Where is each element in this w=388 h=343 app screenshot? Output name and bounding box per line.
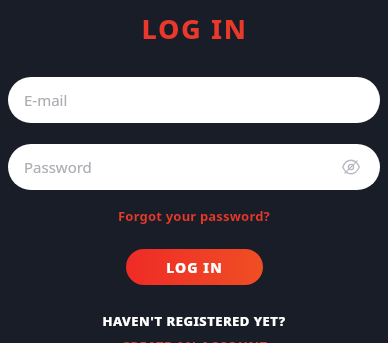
staticText: CREATE AN ACCOUNT [121, 337, 268, 343]
staticText: Forgot your password? [118, 207, 270, 225]
button[interactable]: Password [8, 144, 380, 190]
staticText: E-mail [24, 90, 68, 110]
button[interactable]: LOG IN [126, 249, 263, 285]
button[interactable]: CREATE AN ACCOUNT [121, 337, 268, 343]
button[interactable]: Forgot your password? [118, 207, 270, 225]
staticText: Password [24, 157, 92, 177]
staticText: LOG IN [141, 10, 248, 47]
button[interactable]: E-mail [8, 77, 380, 123]
button[interactable]: Show password [340, 156, 362, 178]
staticText: LOG IN [166, 258, 223, 277]
staticText: HAVEN'T REGISTERED YET? [102, 312, 286, 330]
